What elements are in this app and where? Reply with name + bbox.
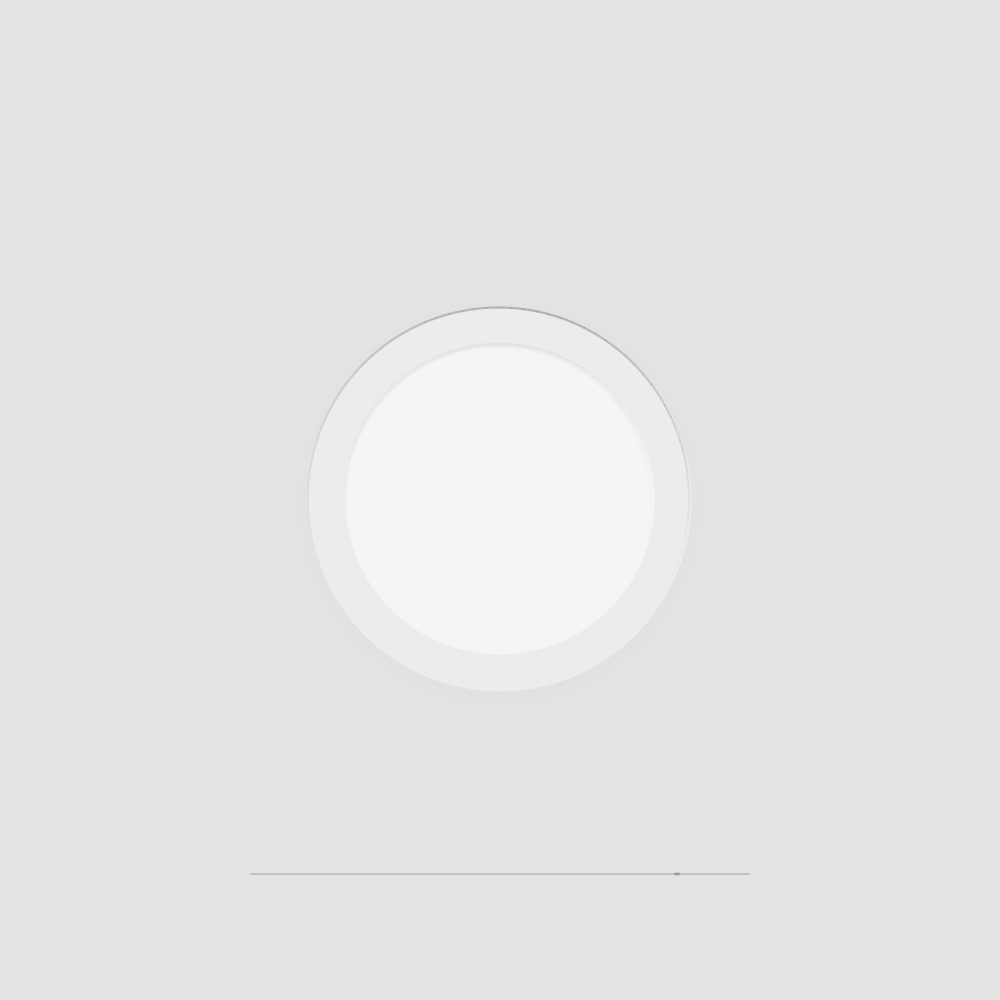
button[interactable]: Slider (220, 852, 780, 896)
button[interactable]: Dial (0, 0, 1000, 1000)
